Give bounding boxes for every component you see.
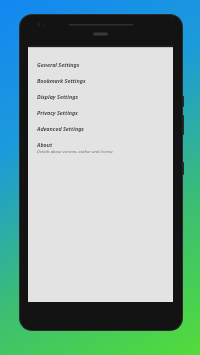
staticText: General Settings — [37, 61, 80, 68]
button[interactable]: Bookmark Settings — [28, 74, 173, 90]
staticText: Bookmark Settings — [37, 77, 86, 84]
staticText: About — [37, 141, 53, 148]
button[interactable]: Power button — [182, 96, 184, 107]
button[interactable]: Display Settings — [28, 90, 173, 106]
button[interactable]: Volume button — [182, 115, 184, 135]
button[interactable]: General Settings — [28, 58, 173, 74]
button[interactable]: Advanced Settings — [28, 122, 173, 138]
staticText: Advanced Settings — [37, 125, 84, 132]
button[interactable]: Privacy Settings — [28, 106, 173, 122]
staticText: Privacy Settings — [37, 109, 78, 116]
staticText: Details about version, author and licens… — [37, 149, 113, 155]
button[interactable]: About — [28, 138, 173, 156]
staticText: Display Settings — [37, 93, 78, 100]
